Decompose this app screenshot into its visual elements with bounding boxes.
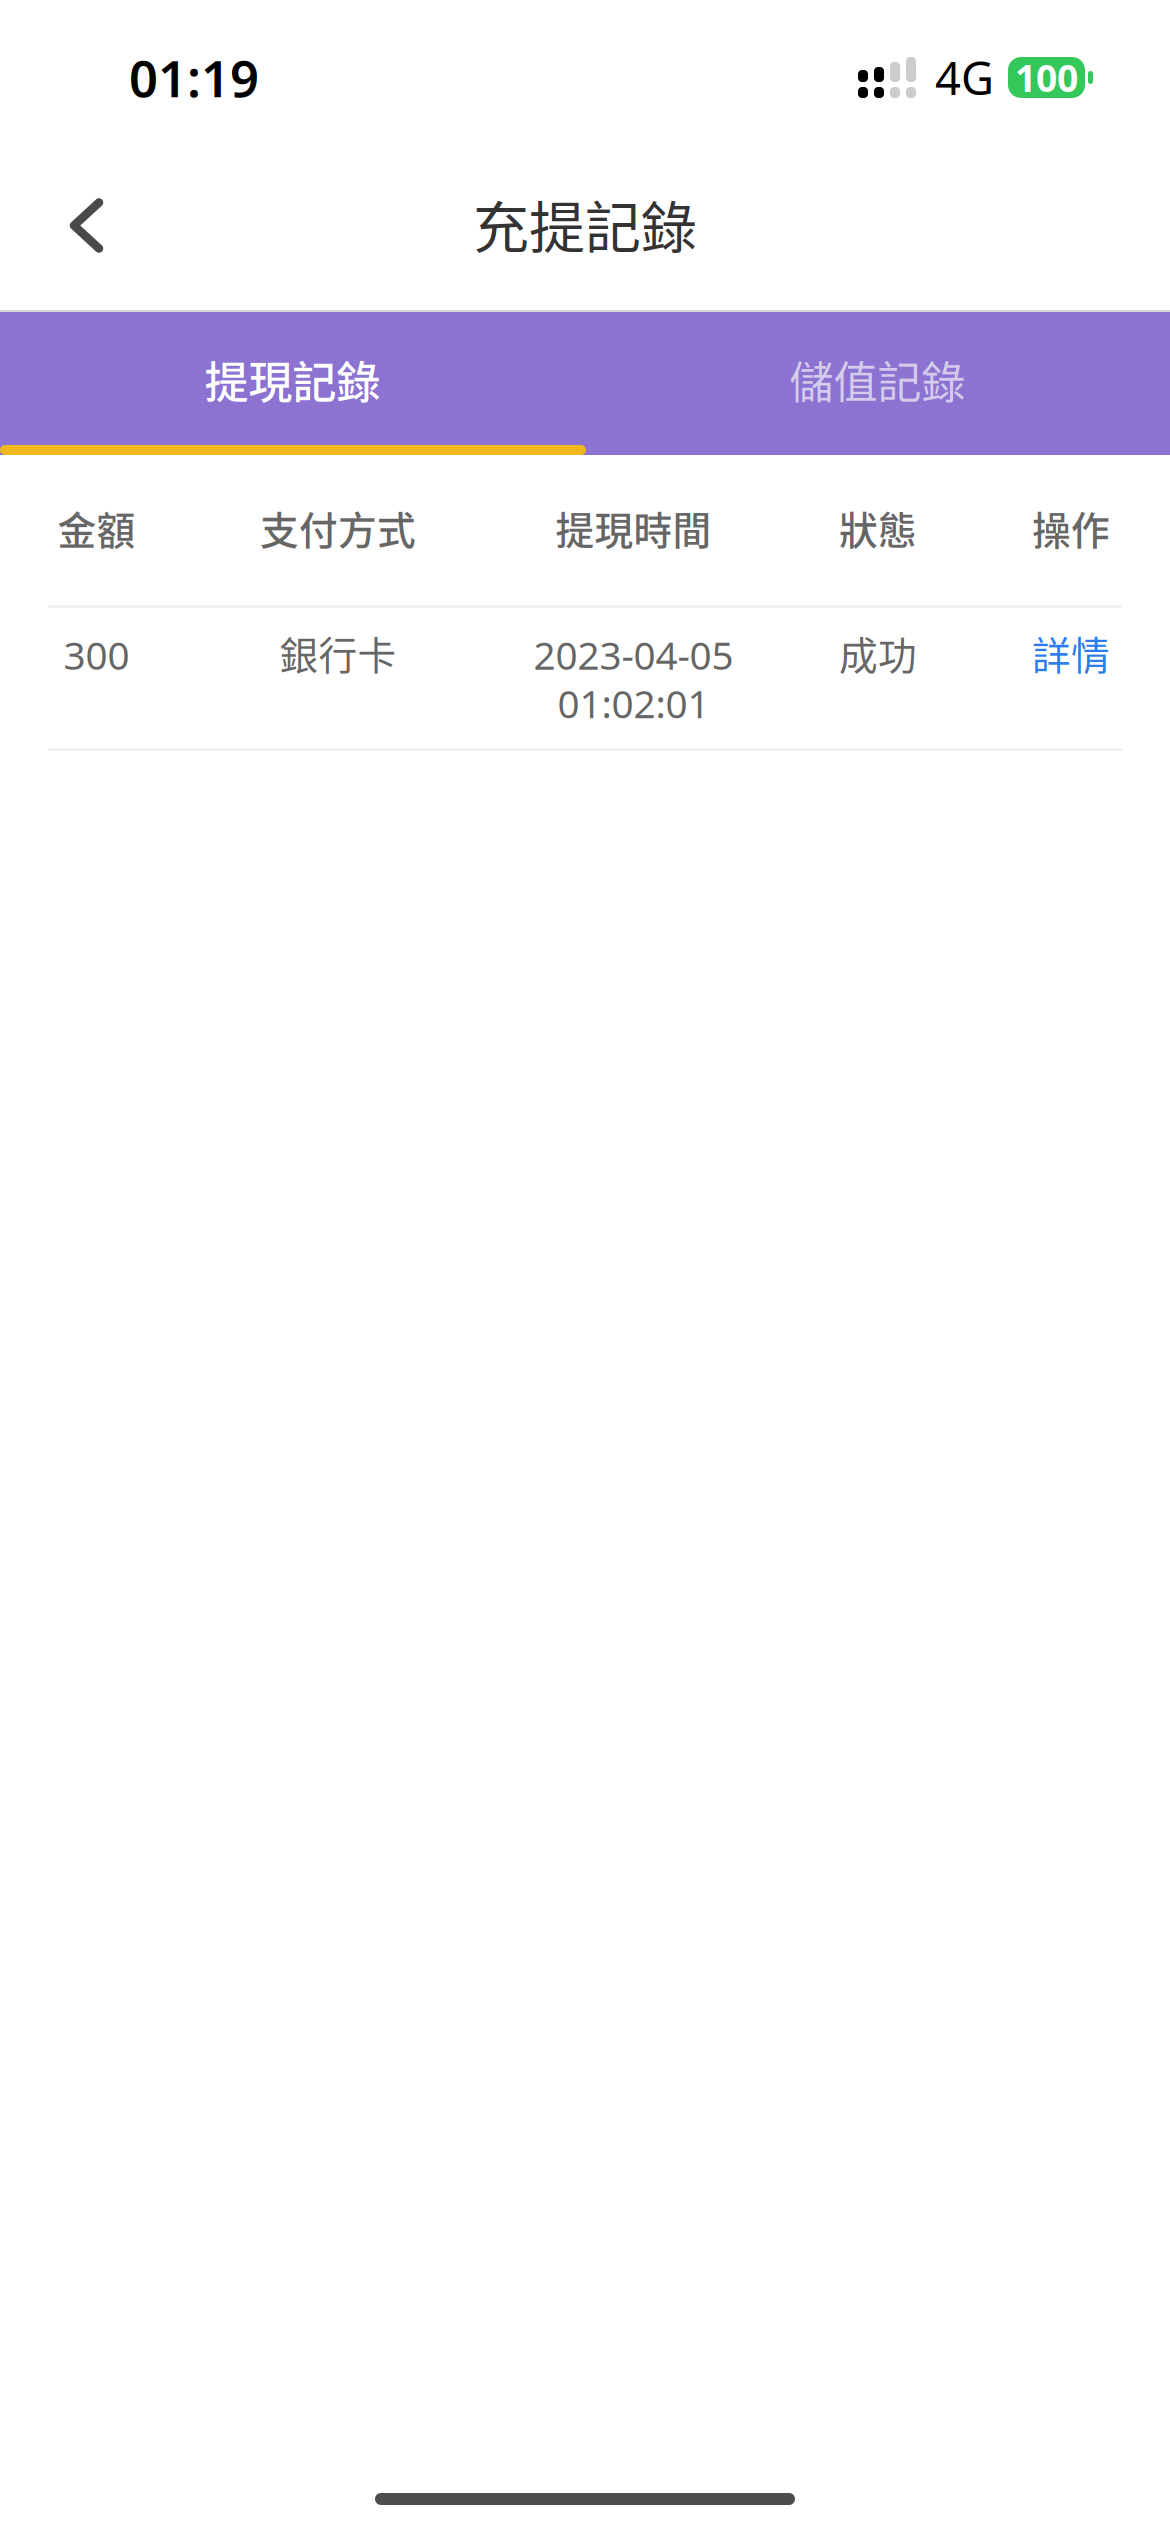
staticText: 金額 [57,500,135,556]
staticText: 充提記錄 [473,183,697,264]
staticText: 儲值記錄 [789,348,965,411]
staticText: 成功 [839,625,917,681]
staticText: 狀態 [839,500,917,556]
staticText: 提現記錄 [204,348,380,411]
staticText: 01:19 [129,44,259,111]
staticText: 銀行卡 [279,625,396,681]
staticText: 提現時間 [555,500,711,556]
button[interactable]: 儲值記錄 [585,312,1170,455]
staticText: 100 [1015,53,1078,102]
staticText: 詳情 [1032,625,1110,681]
button[interactable]: 提現記錄 [0,312,585,455]
staticText: 01:02:01 [557,677,709,729]
staticText: 操作 [1032,500,1110,556]
button[interactable]: Back [0,155,140,310]
button[interactable]: 詳情 [972,625,1170,681]
staticText: 2023-04-05 [533,629,733,680]
staticText: 300 [63,629,129,680]
staticText: 支付方式 [260,500,416,556]
staticText: 4G [935,47,994,108]
